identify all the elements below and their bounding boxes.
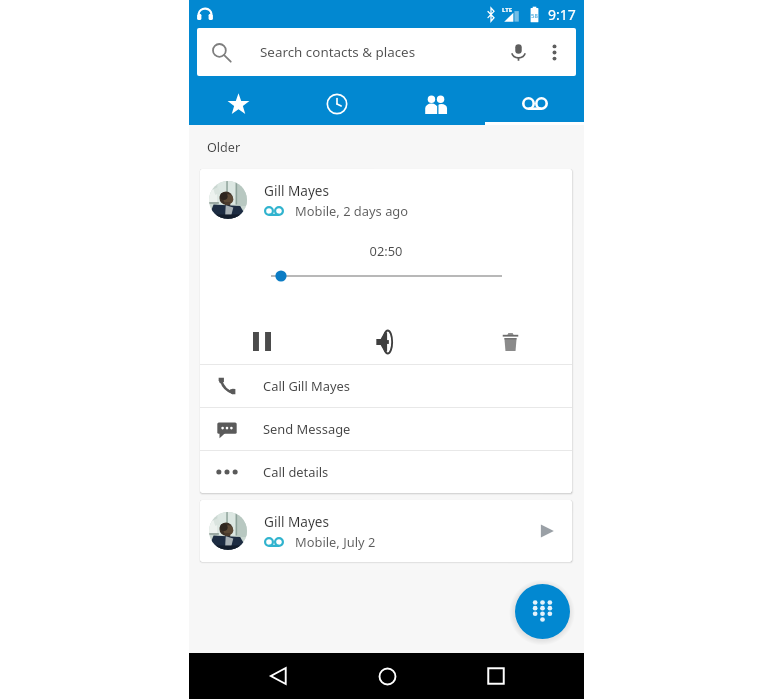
button[interactable]: Voicemail [485, 76, 584, 125]
button[interactable]: Back [241, 653, 315, 699]
staticText: Call Gill Mayes [263, 377, 351, 395]
staticText: Mobile, 2 days ago [295, 202, 409, 220]
button[interactable]: Recents [459, 653, 533, 699]
button[interactable]: Pause [200, 319, 324, 364]
staticText: 02:50 [200, 242, 572, 260]
button[interactable]: Recents [287, 76, 386, 125]
staticText: LTE [502, 6, 513, 14]
button[interactable]: Call Gill Mayes [200, 365, 572, 407]
staticText: Search contacts & places [260, 43, 416, 61]
button[interactable]: Gill Mayes [200, 500, 572, 562]
staticText: Mobile, July 2 [295, 533, 376, 551]
staticText: Gill Mayes [264, 512, 330, 531]
staticText: Older [207, 139, 584, 156]
button[interactable]: Send Message [200, 408, 572, 450]
button[interactable]: Call details [200, 451, 572, 493]
staticText: 58 [531, 12, 538, 20]
button[interactable]: Search contacts & places [197, 28, 576, 76]
button[interactable]: Speaker [324, 319, 448, 364]
button[interactable]: Dialpad [515, 584, 570, 639]
staticText: Send Message [263, 420, 351, 438]
staticText: 9:17 [548, 5, 576, 24]
staticText: Gill Mayes [264, 181, 330, 200]
button[interactable]: Contacts [386, 76, 485, 125]
button[interactable]: Home [350, 653, 424, 699]
staticText: Call details [263, 463, 329, 481]
button[interactable]: Favorites [189, 76, 287, 125]
button[interactable]: Delete [448, 319, 572, 364]
